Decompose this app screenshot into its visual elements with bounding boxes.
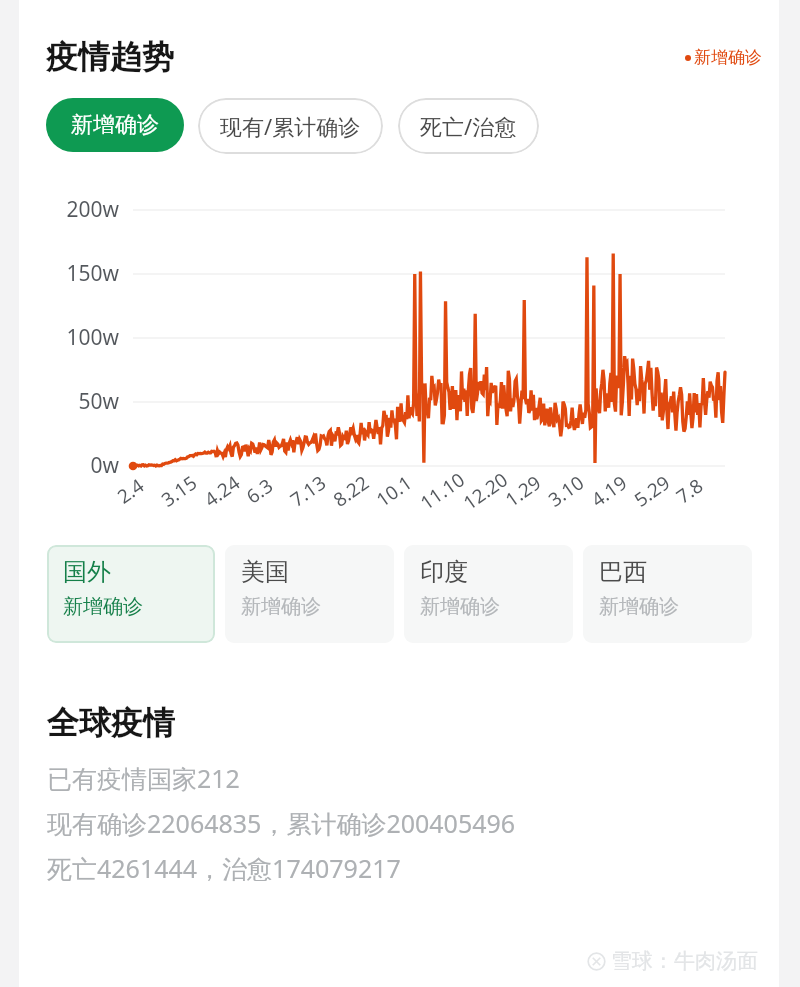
staticText: 10.1 [371, 469, 417, 513]
staticText: 新增确诊 [71, 111, 159, 139]
staticText: 印度 [420, 557, 468, 587]
staticText: 新增确诊 [241, 594, 321, 619]
staticText: 雪球：牛肉汤面 [611, 948, 758, 974]
staticText: 3.10 [543, 469, 589, 513]
button[interactable]: 印度 [404, 545, 573, 643]
staticText: 新增确诊 [694, 47, 762, 68]
staticText: 全球疫情 [47, 703, 175, 743]
staticText: 1.29 [500, 469, 546, 513]
staticText: 6.3 [241, 473, 278, 509]
staticText: 已有疫情国家212 [47, 761, 240, 795]
button[interactable]: 巴西 [583, 545, 752, 643]
staticText: 50w [19, 387, 119, 416]
staticText: 巴西 [599, 557, 647, 587]
staticText: 新增确诊 [420, 594, 500, 619]
staticText: 2.4 [112, 473, 149, 509]
staticText: 美国 [241, 557, 289, 587]
staticText: 0w [19, 451, 119, 480]
button[interactable]: 死亡/治愈 [398, 98, 539, 154]
staticText: 8.22 [328, 469, 374, 513]
button[interactable]: 新增确诊 [46, 98, 184, 152]
staticText: 12.20 [458, 466, 513, 516]
staticText: 死亡4261444，治愈174079217 [47, 851, 401, 885]
staticText: 国外 [63, 557, 111, 587]
staticText: 现有确诊22064835，累计确诊200405496 [47, 806, 516, 840]
button[interactable]: 国外 [47, 545, 215, 643]
staticText: 150w [19, 259, 119, 288]
button[interactable]: 美国 [225, 545, 394, 643]
staticText: 4.19 [586, 469, 632, 513]
staticText: 死亡/治愈 [420, 111, 517, 141]
staticText: 5.29 [629, 469, 675, 513]
staticText: 7.8 [671, 473, 708, 509]
staticText: 7.13 [285, 469, 331, 513]
staticText: 3.15 [156, 469, 202, 513]
staticText: 新增确诊 [599, 594, 679, 619]
button[interactable]: 现有/累计确诊 [198, 98, 383, 154]
staticText: 新增确诊 [63, 594, 143, 619]
staticText: 200w [19, 195, 119, 224]
staticText: 100w [19, 323, 119, 352]
staticText: 11.10 [415, 466, 470, 516]
staticText: 疫情趋势 [46, 37, 174, 77]
staticText: 4.24 [199, 469, 245, 513]
staticText: 现有/累计确诊 [220, 111, 361, 141]
